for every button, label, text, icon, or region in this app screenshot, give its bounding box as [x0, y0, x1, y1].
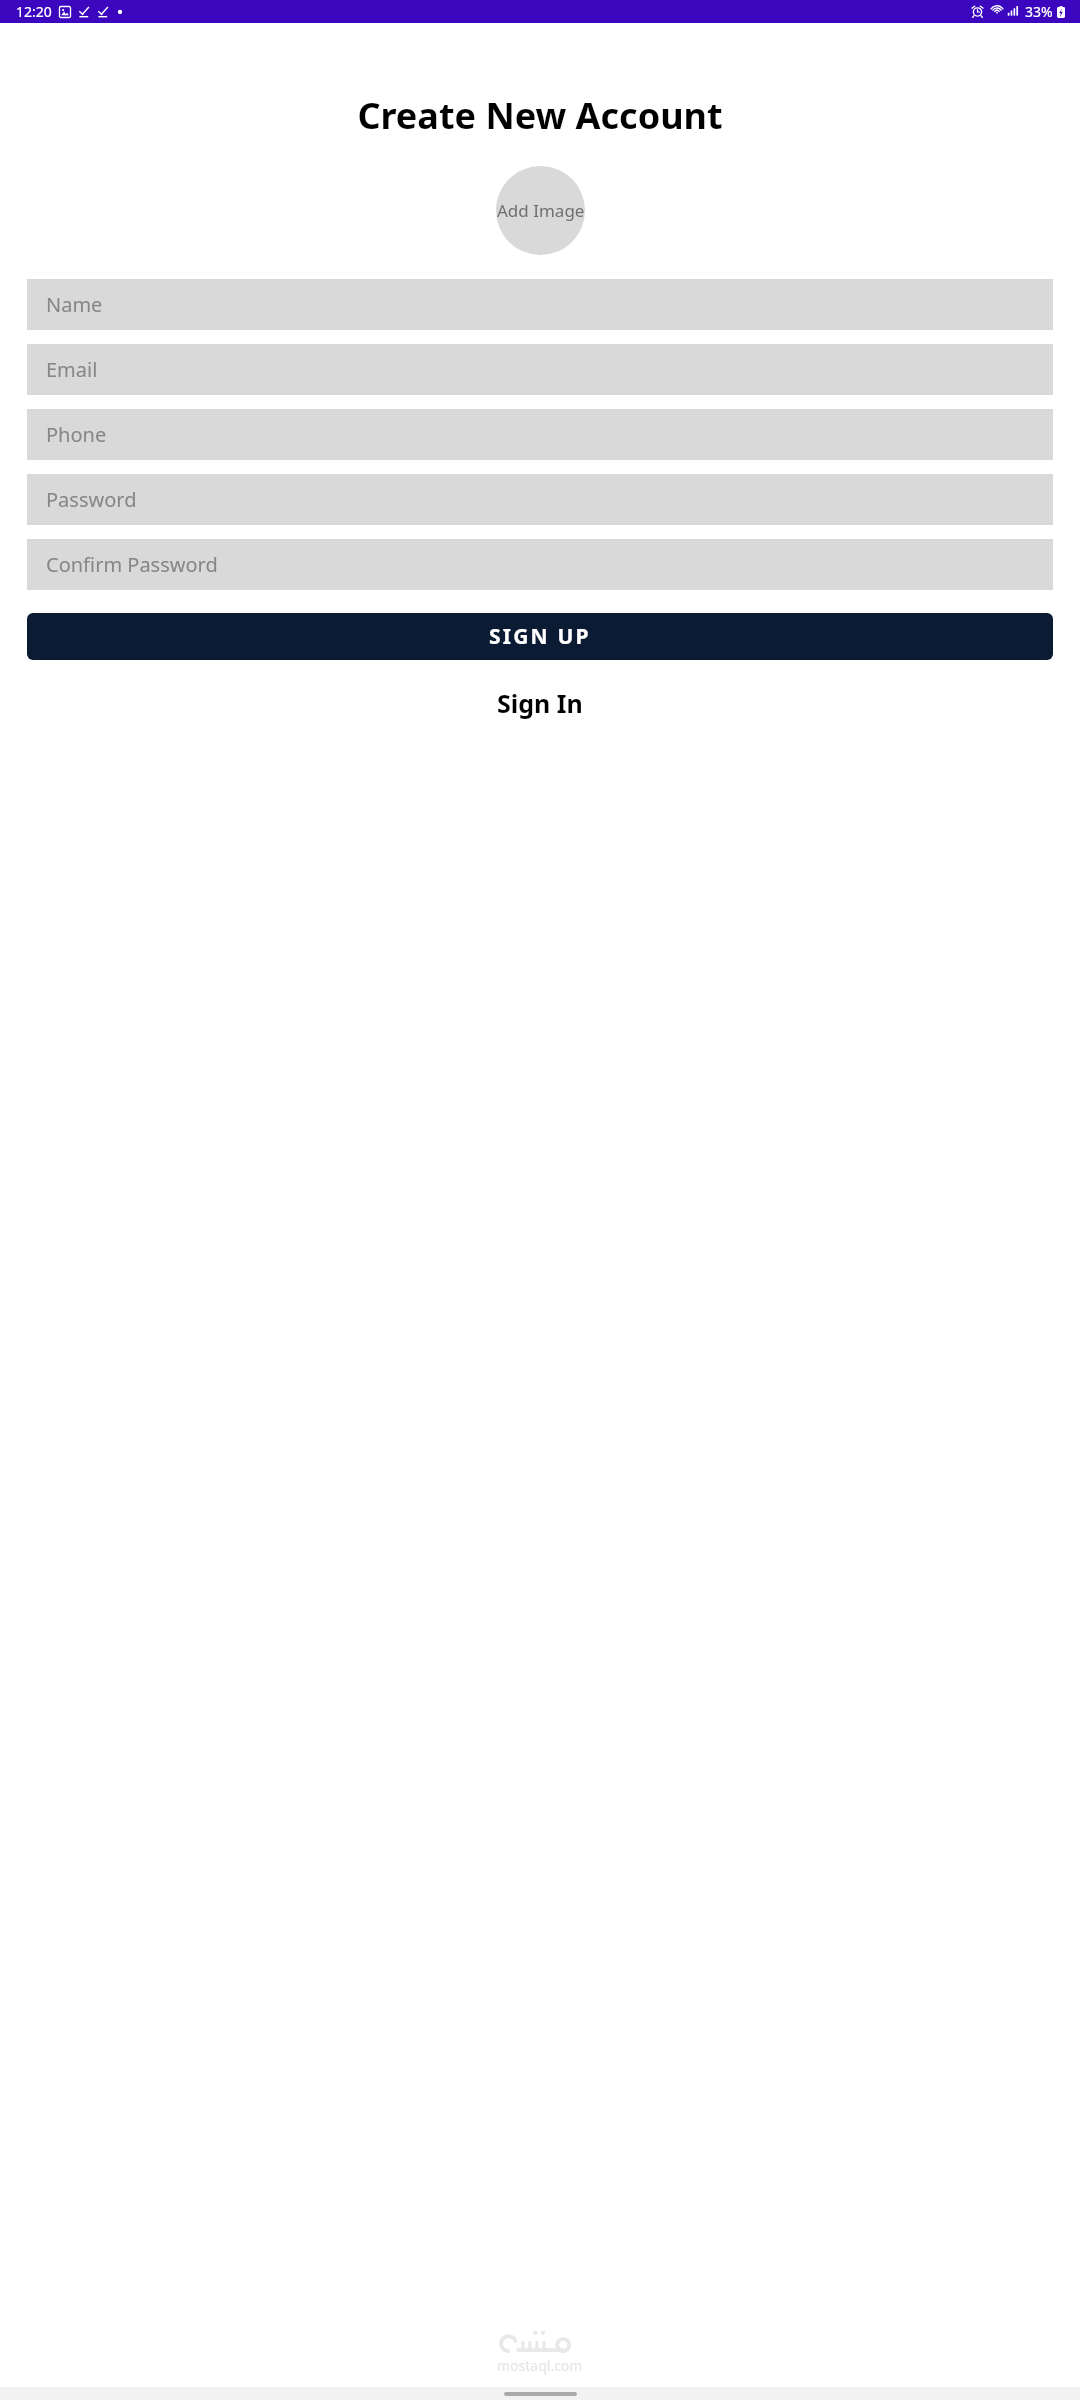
button[interactable]: SIGN UP [27, 613, 1053, 660]
staticText: 12:20 [16, 2, 52, 21]
staticText: Add Image [497, 199, 585, 222]
staticText: Name [46, 291, 103, 318]
staticText: Email [46, 356, 98, 383]
staticText: Phone [46, 421, 107, 448]
button[interactable]: Name [27, 279, 1053, 330]
staticText: Password [46, 486, 137, 513]
staticText: 33% [1025, 2, 1053, 21]
button[interactable]: Phone [27, 409, 1053, 460]
staticText: Sign In [497, 686, 583, 720]
button[interactable]: Add Image [496, 166, 585, 255]
staticText: Create New Account [0, 91, 1080, 140]
button[interactable]: Sign In [479, 680, 601, 726]
staticText: SIGN UP [489, 622, 591, 651]
staticText: mostaql.com [497, 2356, 583, 2375]
staticText: Confirm Password [46, 551, 218, 578]
button[interactable]: Confirm Password [27, 539, 1053, 590]
button[interactable]: Email [27, 344, 1053, 395]
button[interactable]: Password [27, 474, 1053, 525]
